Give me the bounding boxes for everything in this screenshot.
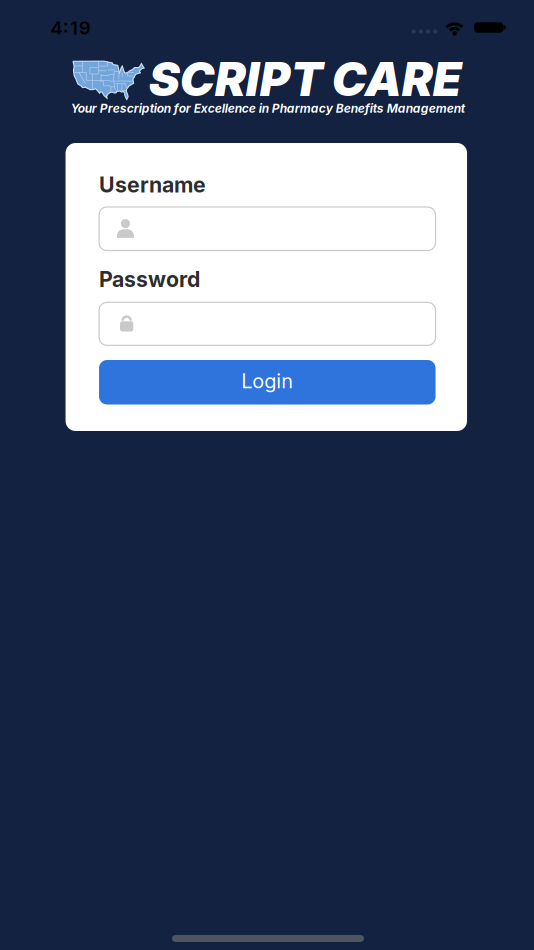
button[interactable] bbox=[99, 302, 436, 345]
staticText: SCRIPT CARE bbox=[149, 51, 462, 107]
button[interactable]: Login bbox=[99, 360, 436, 404]
button[interactable] bbox=[99, 207, 436, 250]
staticText: Password bbox=[99, 267, 200, 292]
staticText: Login bbox=[241, 369, 293, 393]
staticText: 4:19 bbox=[50, 17, 91, 39]
staticText: Your Prescription for Excellence in Phar… bbox=[71, 101, 465, 115]
staticText: Username bbox=[99, 172, 206, 197]
